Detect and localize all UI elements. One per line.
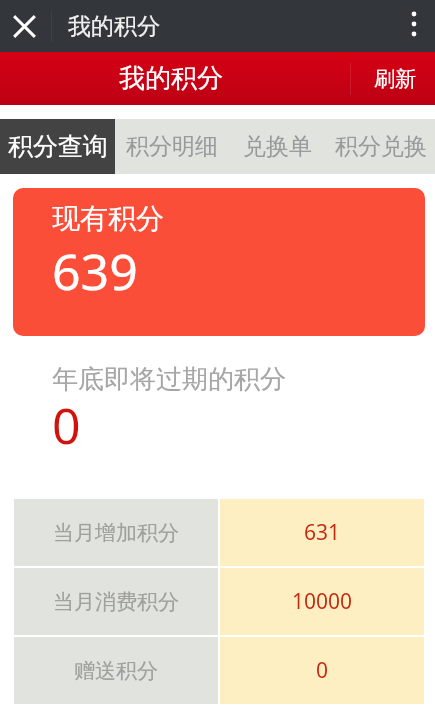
staticText: 现有积分 [52, 201, 164, 236]
staticText: 0 [52, 391, 81, 459]
staticText: 631 [304, 518, 341, 547]
button[interactable]: 赠送积分 [14, 637, 424, 704]
staticText: 积分查询 [8, 131, 108, 162]
staticText: 当月增加积分 [53, 520, 179, 546]
staticText: 积分兑换 [335, 132, 427, 161]
staticText: 0 [316, 656, 329, 685]
staticText: 刷新 [374, 66, 416, 92]
staticText: 积分明细 [126, 132, 218, 161]
button[interactable]: 刷新 [350, 52, 435, 105]
staticText: 兑换单 [243, 132, 312, 161]
staticText: 年底即将过期的积分 [52, 363, 286, 396]
button[interactable]: 积分兑换 [326, 119, 435, 174]
staticText: 639 [52, 237, 138, 305]
button[interactable]: 积分查询 [0, 119, 115, 174]
button[interactable]: 当月消费积分 [14, 568, 424, 635]
staticText: 赠送积分 [74, 658, 158, 684]
button[interactable]: 兑换单 [229, 119, 326, 174]
button[interactable]: More options [393, 5, 435, 47]
staticText: 我的积分 [68, 12, 160, 41]
staticText: 当月消费积分 [53, 589, 179, 615]
staticText: 10000 [292, 587, 353, 616]
button[interactable]: 积分明细 [115, 119, 229, 174]
button[interactable]: 当月增加积分 [14, 499, 424, 566]
staticText: 我的积分 [119, 62, 223, 95]
button[interactable]: 现有积分 [13, 188, 425, 336]
button[interactable]: Close [5, 7, 43, 45]
